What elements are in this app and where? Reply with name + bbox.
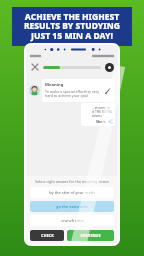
staticText: Meaning (45, 82, 64, 88)
button[interactable]: Meaning (42, 79, 115, 102)
staticText: Share (96, 119, 107, 124)
button[interactable]: by the skin of your teeth (30, 187, 114, 198)
staticText: go the extra mile (56, 204, 88, 209)
button[interactable]: Close (30, 62, 40, 72)
staticText: To make a special effort/try very hard t… (45, 89, 100, 99)
button[interactable]: Settings (105, 63, 114, 72)
staticText: …elcome in d THE EXTRA ations." (92, 105, 113, 118)
button[interactable]: crunch time (30, 215, 114, 226)
button[interactable]: go the extra mile (30, 201, 114, 212)
staticText: ACHIEVE THE HIGHEST RESULTS BY STUDYING … (16, 11, 128, 42)
button[interactable]: CONTINUE (67, 230, 114, 241)
staticText: by the skin of your teeth (49, 190, 95, 195)
button[interactable]: CHECK (30, 230, 64, 241)
staticText: crunch time (61, 218, 84, 223)
staticText: CHECK (41, 233, 54, 238)
staticText: CONTINUE (80, 233, 101, 238)
button[interactable]: Share (96, 119, 113, 124)
staticText: Select right answer for the meaning abov… (30, 179, 114, 184)
button[interactable]: Edit (104, 87, 112, 95)
button[interactable]: …elcome in d THE EXTRA ations." (81, 103, 115, 126)
